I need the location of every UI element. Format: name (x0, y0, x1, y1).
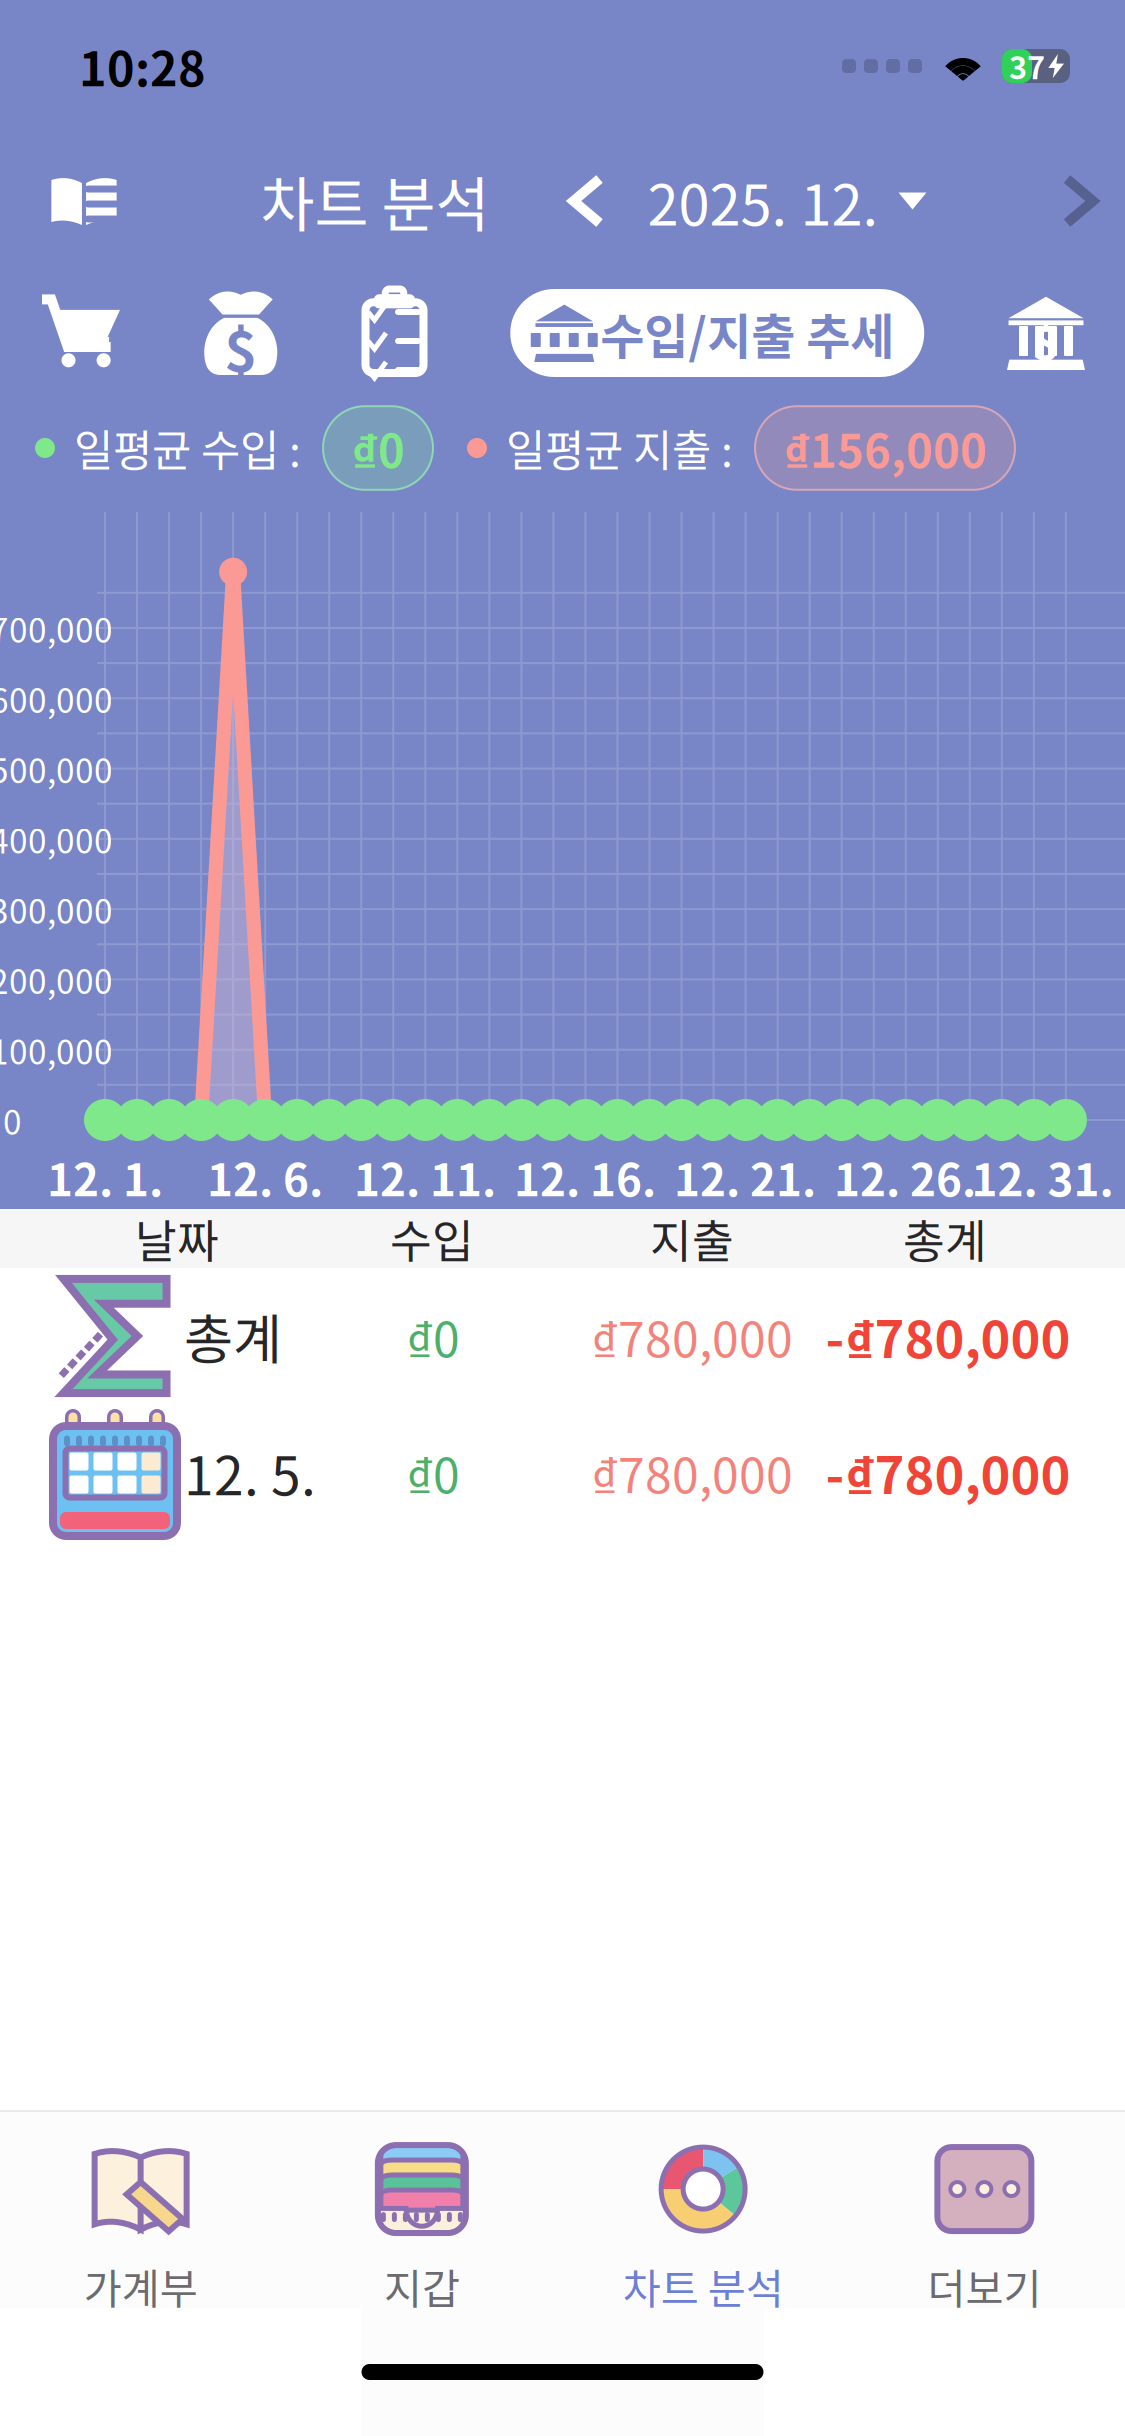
staticText: 총계 (184, 1297, 282, 1375)
staticText: 12. 11. (354, 1145, 496, 1209)
staticText: 10:28 (79, 32, 206, 100)
staticText: 날짜 (135, 1206, 219, 1271)
staticText: 일평균 수입 : (74, 417, 301, 479)
staticText: 총계 (903, 1206, 987, 1271)
button[interactable]: 더보기 (844, 2112, 1125, 2308)
staticText: 0 (3, 1096, 22, 1144)
staticText: -₫780,000 (825, 1299, 1070, 1373)
staticText: 12. 5. (184, 1433, 316, 1511)
staticText: $ (224, 306, 257, 388)
staticText: ₫0 (406, 1301, 460, 1371)
staticText: 일평균 지출 : (506, 417, 733, 479)
button[interactable]: 차트 분석 (562, 2112, 844, 2308)
button[interactable]: 총계 (0, 1268, 1125, 1404)
button[interactable]: 지갑 (281, 2112, 562, 2308)
staticText: 더보기 (927, 2256, 1041, 2316)
button[interactable]: 12. 5. (0, 1404, 1125, 1540)
staticText: 12. 16. (514, 1145, 656, 1209)
staticText: 700,000 (0, 604, 113, 652)
button[interactable]: 수입 (203, 291, 279, 375)
staticText: 37 (1009, 44, 1045, 88)
staticText: ₫780,000 (591, 1437, 793, 1507)
button[interactable]: 다음 달 (1045, 159, 1125, 243)
staticText: 12. 31. (971, 1145, 1113, 1209)
staticText: 가계부 (84, 2256, 198, 2316)
staticText: 수입 (390, 1206, 474, 1271)
staticText: 차트 분석 (260, 158, 489, 243)
staticText: 2025. 12. (647, 160, 878, 242)
button[interactable]: 2025. 12. (647, 144, 926, 258)
staticText: 12. 26. (834, 1145, 976, 1209)
button[interactable]: 가계부 (0, 152, 142, 250)
staticText: 수입/지출 추세 (600, 298, 894, 368)
staticText: 300,000 (0, 885, 113, 933)
staticText: 지갑 (384, 2256, 460, 2316)
staticText: 200,000 (0, 955, 113, 1004)
staticText: 600,000 (0, 674, 113, 723)
staticText: 100,000 (0, 1026, 113, 1074)
staticText: 400,000 (0, 815, 113, 863)
staticText: ₫780,000 (591, 1301, 793, 1371)
staticText: ₫156,000 (783, 415, 987, 481)
staticText: 차트 분석 (623, 2256, 784, 2316)
staticText: -₫780,000 (825, 1435, 1070, 1509)
button[interactable]: 예산 (361, 289, 427, 377)
staticText: ₫0 (351, 415, 405, 481)
staticText: 12. 6. (207, 1145, 323, 1209)
button[interactable]: 수입/지출 추세 (510, 289, 924, 377)
staticText: ₫0 (406, 1437, 460, 1507)
button[interactable]: 자산 (1007, 296, 1125, 370)
staticText: $ (1032, 307, 1059, 373)
staticText: 지출 (650, 1206, 734, 1271)
staticText: 12. 21. (674, 1145, 816, 1209)
staticText: 12. 1. (47, 1145, 163, 1209)
button[interactable]: 이전 달 (551, 159, 621, 243)
staticText: 500,000 (0, 744, 113, 793)
button[interactable]: 지출 (0, 298, 120, 368)
button[interactable]: 가계부 (0, 2112, 281, 2308)
